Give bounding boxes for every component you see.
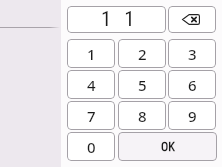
button[interactable]: 8 — [118, 101, 166, 130]
button[interactable]: 2 — [118, 39, 166, 68]
button[interactable]: 5 — [118, 70, 166, 99]
button[interactable]: 9 — [168, 101, 216, 130]
staticText: 0 — [87, 137, 96, 157]
button[interactable]: 4 — [67, 70, 115, 99]
staticText: 8 — [138, 106, 147, 126]
staticText: 6 — [188, 75, 197, 95]
staticText: 4 — [87, 75, 96, 95]
button[interactable]: 1 — [67, 39, 115, 68]
staticText: 3 — [188, 44, 197, 64]
button[interactable]: OK — [118, 132, 217, 161]
button[interactable]: 0 — [67, 132, 115, 161]
staticText: 7 — [87, 106, 96, 126]
staticText: 2 — [138, 44, 147, 64]
staticText: 1 1 — [101, 7, 139, 32]
staticText: 5 — [138, 75, 147, 95]
staticText: 9 — [188, 106, 197, 126]
button[interactable]: 6 — [168, 70, 216, 99]
button[interactable]: 7 — [67, 101, 115, 130]
staticText: OK — [161, 140, 175, 154]
staticText: 1 — [87, 44, 96, 64]
button[interactable]: Backspace — [168, 6, 216, 33]
button[interactable]: 3 — [168, 39, 216, 68]
